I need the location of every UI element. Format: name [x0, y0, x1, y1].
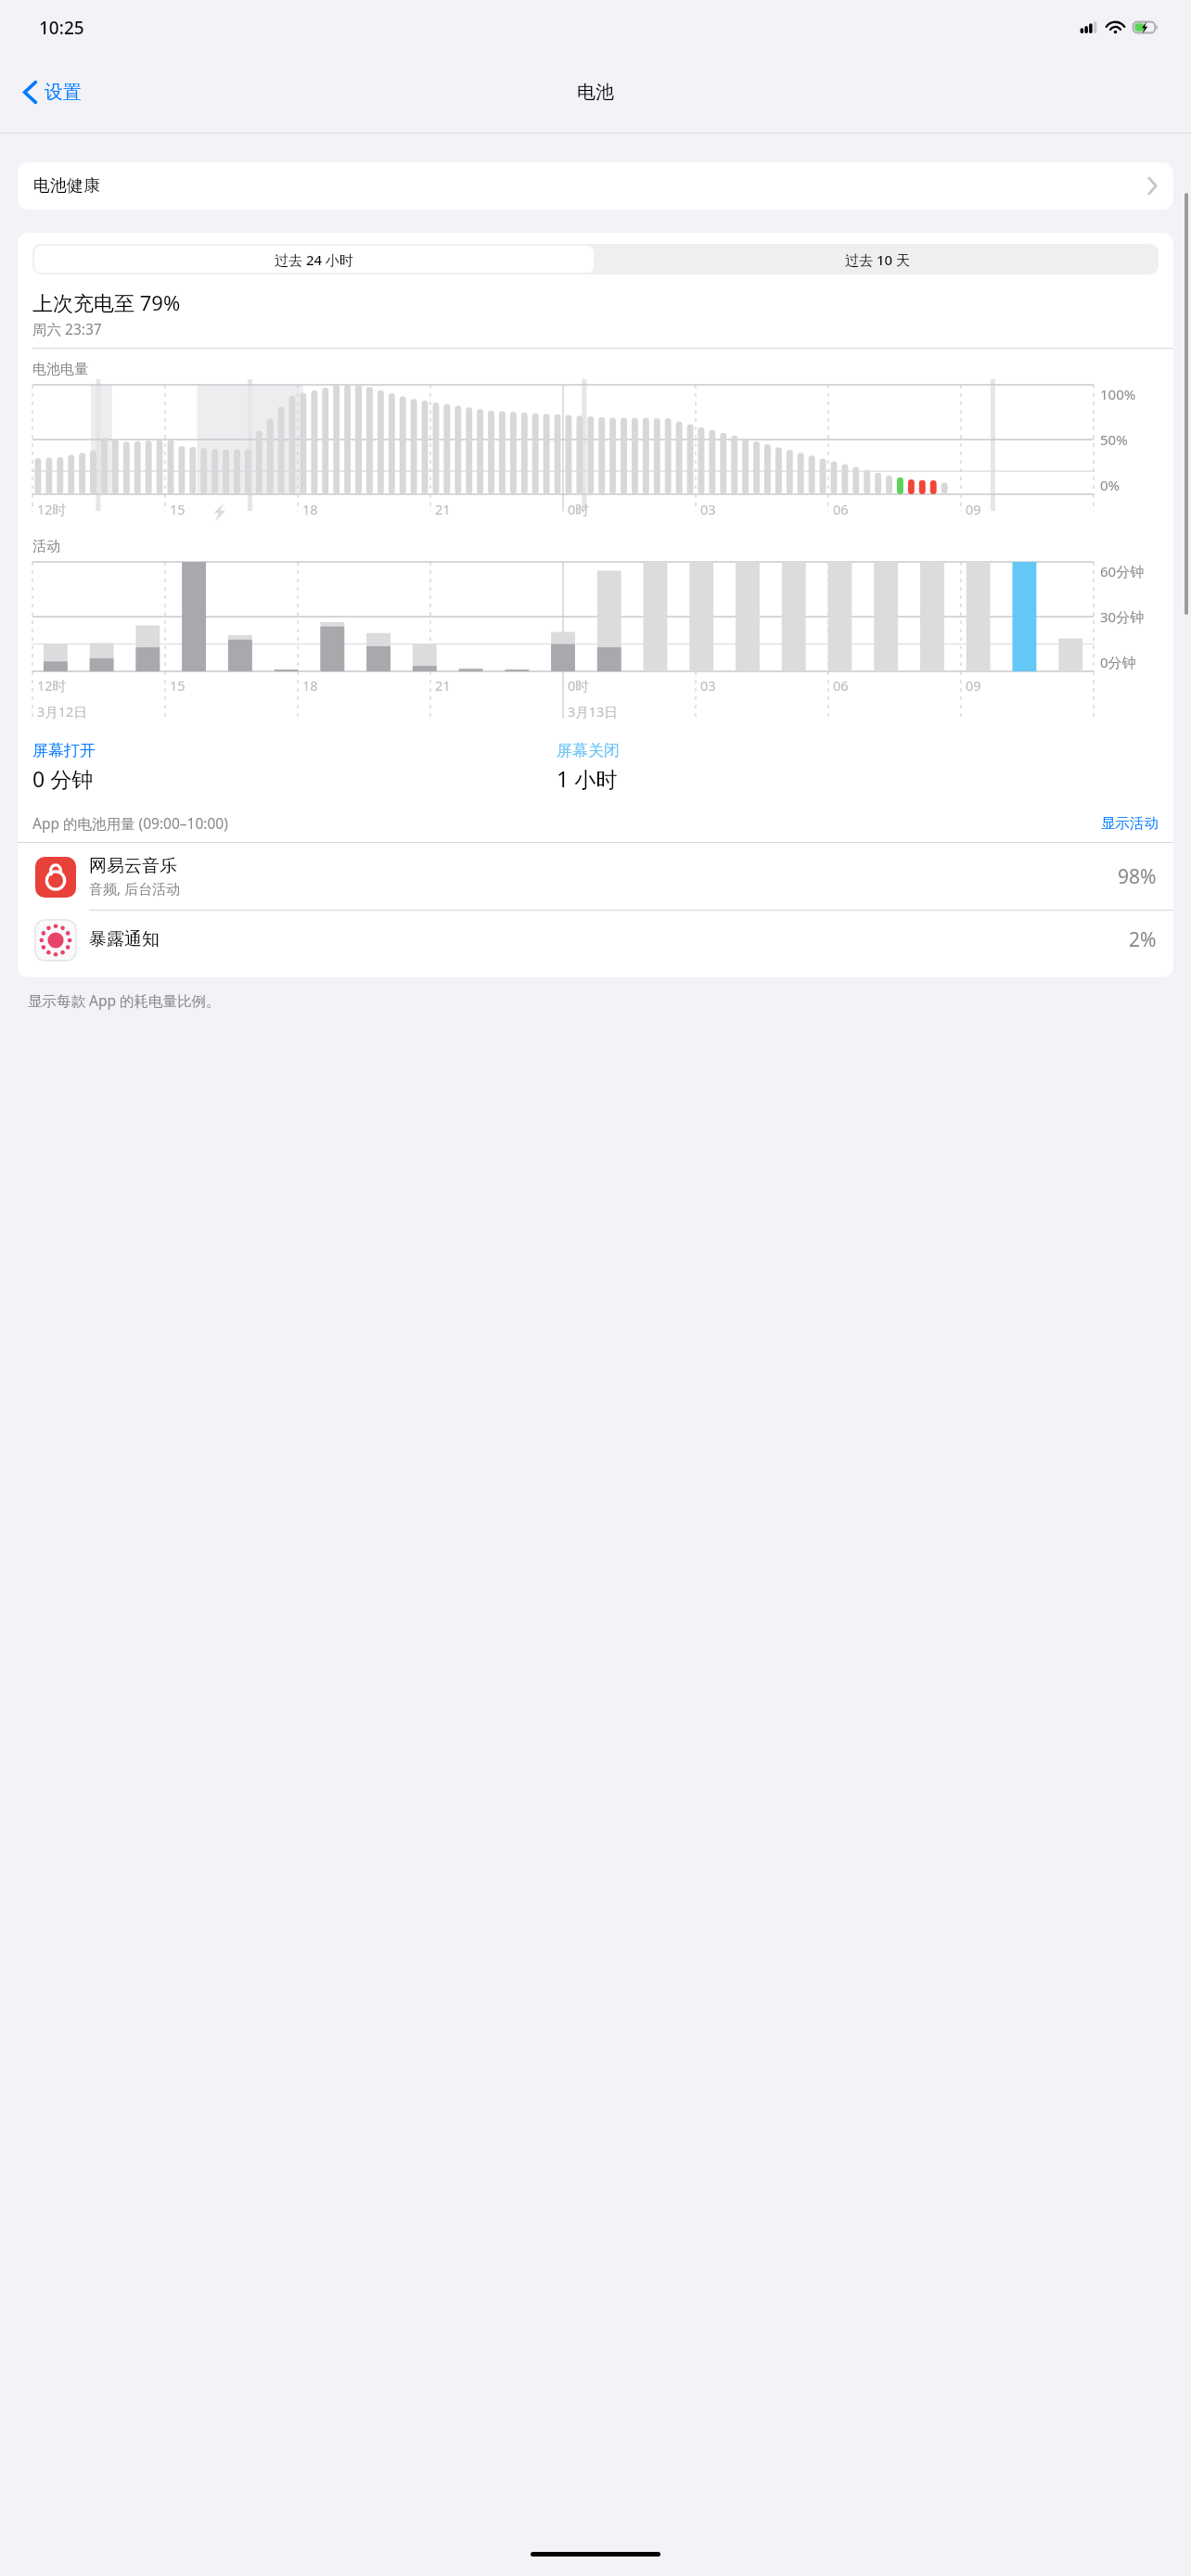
staticText: 暴露通知: [89, 928, 160, 950]
staticText: 3月12日: [37, 702, 87, 721]
staticText: 过去 10 天: [845, 250, 910, 269]
staticText: 12时: [37, 500, 67, 518]
staticText: 30分钟: [1100, 607, 1145, 626]
button[interactable]: 过去 10 天: [595, 244, 1159, 274]
staticText: 0时: [568, 676, 589, 695]
staticText: 0分钟: [1100, 653, 1136, 671]
staticText: 15: [170, 676, 186, 695]
staticText: App 的电池用量 (09:00–10:00): [32, 813, 228, 833]
staticText: 21: [435, 676, 451, 695]
button[interactable]: 网易云音乐: [18, 843, 1173, 911]
staticText: 09: [966, 500, 981, 518]
staticText: 0%: [1100, 476, 1121, 494]
staticText: 电池电量: [32, 361, 88, 378]
staticText: 2%: [1129, 926, 1157, 953]
staticText: 12时: [37, 676, 67, 695]
staticText: 设置: [45, 81, 82, 104]
staticText: 60分钟: [1100, 562, 1145, 580]
staticText: 50%: [1100, 430, 1128, 449]
staticText: 100%: [1100, 385, 1136, 403]
staticText: 网易云音乐: [89, 855, 177, 877]
staticText: 18: [302, 676, 318, 695]
staticText: 屏幕打开: [32, 741, 96, 760]
staticText: 0时: [568, 500, 589, 518]
button[interactable]: 设置: [17, 73, 89, 111]
staticText: 0 分钟: [32, 764, 94, 793]
staticText: 过去 24 小时: [275, 250, 353, 269]
staticText: 1 小时: [557, 764, 618, 793]
staticText: 显示每款 App 的耗电量比例。: [28, 990, 221, 1010]
staticText: 显示活动: [1101, 814, 1159, 833]
staticText: 03: [700, 676, 716, 695]
staticText: 3月13日: [568, 702, 618, 721]
staticText: 06: [833, 676, 849, 695]
staticText: 03: [700, 500, 716, 518]
staticText: 15: [170, 500, 186, 518]
button[interactable]: 过去 24 小时: [34, 246, 594, 273]
staticText: 屏幕关闭: [557, 741, 620, 760]
button[interactable]: 暴露通知: [18, 911, 1173, 968]
staticText: 电池: [577, 81, 614, 104]
staticText: 21: [435, 500, 451, 518]
staticText: 音频, 后台活动: [89, 879, 180, 898]
staticText: 活动: [32, 538, 60, 555]
staticText: 10:25: [39, 16, 84, 40]
staticText: 上次充电至 79%: [32, 288, 181, 316]
button[interactable]: 电池健康: [18, 162, 1173, 210]
staticText: 电池健康: [33, 175, 100, 197]
button[interactable]: 显示活动: [1101, 814, 1159, 833]
staticText: 98%: [1118, 863, 1157, 890]
staticText: 09: [966, 676, 981, 695]
staticText: 06: [833, 500, 849, 518]
staticText: 18: [302, 500, 318, 518]
staticText: 周六 23:37: [32, 319, 102, 338]
